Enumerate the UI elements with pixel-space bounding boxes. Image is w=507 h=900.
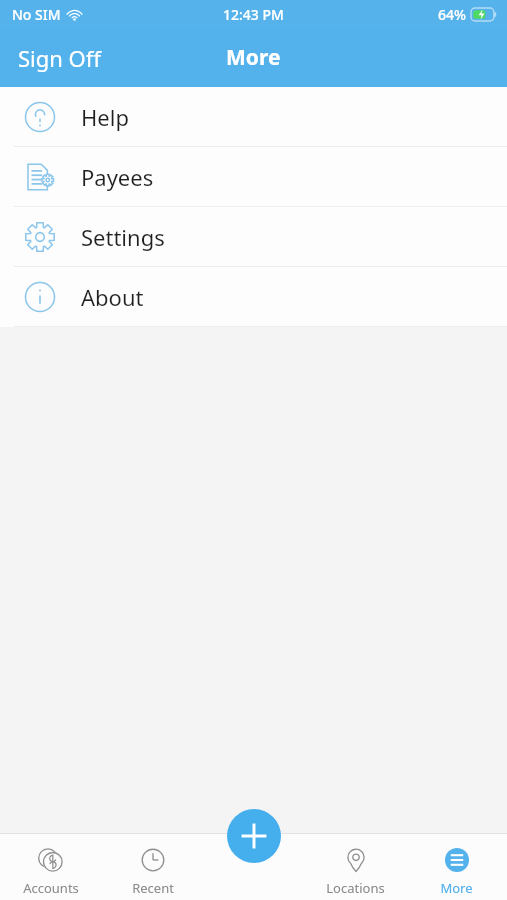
button[interactable]: Locations xyxy=(305,837,406,897)
button[interactable]: Settings xyxy=(0,207,507,266)
button[interactable]: Accounts xyxy=(0,837,102,897)
button[interactable]: Help xyxy=(0,87,507,146)
button[interactable]: Recent xyxy=(102,837,204,897)
staticText: 64% xyxy=(438,5,466,24)
button[interactable]: More xyxy=(406,837,507,897)
button[interactable]: Add xyxy=(227,809,281,863)
button[interactable]: About xyxy=(0,267,507,326)
staticText: Sign Off xyxy=(18,43,101,73)
staticText: No SIM xyxy=(12,5,61,24)
button[interactable]: Payees xyxy=(0,147,507,206)
staticText: Locations xyxy=(326,879,385,897)
staticText: Recent xyxy=(132,879,174,897)
staticText: More xyxy=(440,879,473,897)
staticText: About xyxy=(81,282,144,312)
button[interactable]: Sign Off xyxy=(0,33,119,83)
staticText: Payees xyxy=(81,162,154,192)
staticText: Accounts xyxy=(23,879,79,897)
staticText: 12:43 PM xyxy=(223,5,284,24)
staticText: Settings xyxy=(81,222,165,252)
staticText: Help xyxy=(81,102,129,132)
staticText: More xyxy=(226,43,281,72)
